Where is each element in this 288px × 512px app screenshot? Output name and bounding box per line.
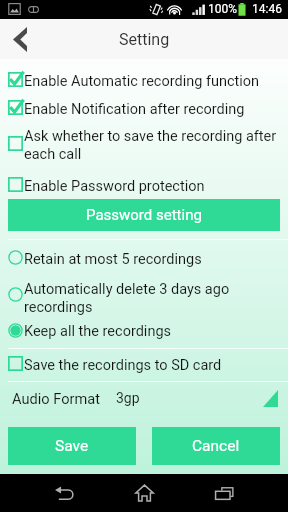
button[interactable]: Enable Automatic recording function [0, 65, 288, 93]
button[interactable]: Ask whether to save the recording after … [0, 120, 288, 166]
button[interactable]: Home [120, 474, 168, 512]
staticText: Automatically delete 3 days ago recordin… [24, 280, 280, 316]
button[interactable]: Keep all the recordings [0, 316, 288, 344]
staticText: Save [55, 437, 89, 455]
staticText: 100% [208, 2, 238, 16]
button[interactable]: Retain at most 5 recordings [0, 243, 288, 271]
staticText: Keep all the recordings [24, 322, 280, 340]
button[interactable]: Save the recordings to SD card [0, 349, 288, 377]
staticText: Enable Notification after recording [24, 100, 280, 118]
button[interactable]: Cancel [152, 427, 280, 465]
button[interactable]: Back [0, 19, 40, 59]
staticText: Save the recordings to SD card [24, 356, 280, 374]
button[interactable]: Recent apps [200, 474, 248, 512]
button[interactable]: Enable Notification after recording [0, 93, 288, 121]
button[interactable]: Password setting [8, 199, 280, 231]
button[interactable]: Save [8, 427, 136, 465]
button[interactable]: Enable Password protection [0, 170, 288, 198]
staticText: Password setting [86, 206, 202, 224]
staticText: 14:46 [252, 2, 282, 16]
button[interactable]: Audio Format [0, 382, 288, 414]
staticText: Enable Automatic recording function [24, 72, 280, 90]
staticText: Cancel [192, 437, 240, 455]
staticText: Setting [119, 30, 170, 49]
staticText: Audio Format [12, 390, 100, 407]
button[interactable]: Back [40, 474, 88, 512]
staticText: 3gp [116, 390, 140, 406]
staticText: Enable Password protection [24, 177, 280, 195]
staticText: Retain at most 5 recordings [24, 250, 280, 268]
button[interactable]: Automatically delete 3 days ago recordin… [0, 271, 288, 317]
staticText: Ask whether to save the recording after … [24, 127, 280, 163]
